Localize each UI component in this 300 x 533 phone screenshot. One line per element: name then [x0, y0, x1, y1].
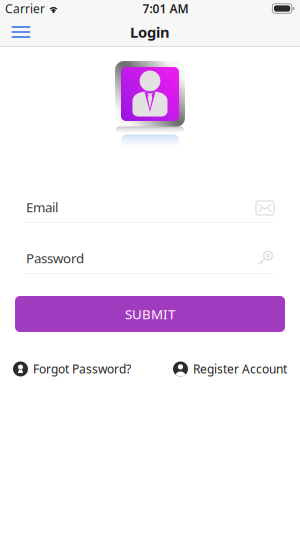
staticText: Email [26, 198, 58, 216]
staticText: Forgot Password? [33, 361, 131, 377]
staticText: Login [130, 22, 170, 42]
button[interactable]: SUBMIT [15, 296, 285, 332]
button[interactable]: Register Account [173, 361, 287, 377]
button[interactable]: Forgot Password? [13, 361, 131, 377]
staticText: Register Account [193, 361, 287, 377]
staticText: Password [26, 249, 84, 267]
staticText: 7:01 AM [142, 0, 188, 16]
staticText: Carrier [5, 0, 45, 16]
button[interactable]: Menu [4, 18, 38, 46]
staticText: SUBMIT [125, 305, 175, 323]
